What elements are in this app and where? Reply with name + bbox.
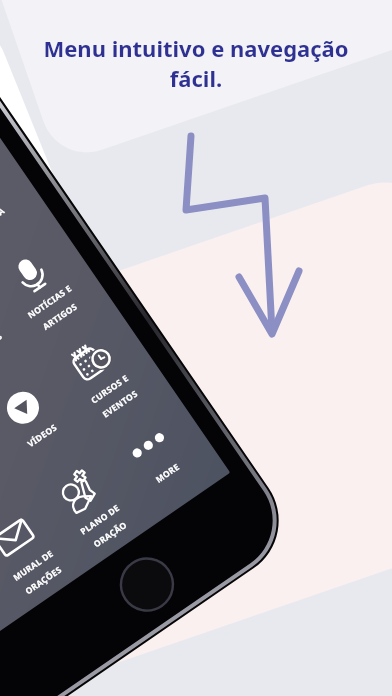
staticText: Menu intuitivo e navegação fácil. bbox=[0, 33, 392, 93]
button[interactable]: Mural de orações bbox=[0, 512, 56, 570]
button[interactable]: Notícias e artigos bbox=[4, 248, 66, 308]
button[interactable]: Vídeos bbox=[0, 382, 60, 442]
button[interactable]: Plano de oração bbox=[54, 462, 118, 522]
button[interactable]: Cursos e eventos bbox=[62, 336, 128, 398]
button[interactable]: More bbox=[120, 418, 182, 476]
